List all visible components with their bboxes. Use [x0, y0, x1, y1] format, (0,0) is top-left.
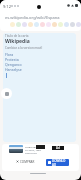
button[interactable]: Lorem ipsum	[2, 144, 79, 171]
button[interactable]	[28, 22, 33, 27]
staticText: Titulo de la carta	[5, 34, 29, 38]
button[interactable]	[34, 22, 39, 27]
staticText: ad	[37, 149, 40, 152]
staticText: Qengaroo	[5, 62, 22, 67]
button[interactable]	[76, 22, 81, 27]
button[interactable]	[10, 22, 15, 27]
button[interactable]	[64, 22, 69, 27]
staticText: adipiscing	[25, 151, 37, 154]
staticText: Wikipedia	[5, 38, 30, 45]
button[interactable]	[52, 22, 57, 27]
staticText: 9:12	[3, 4, 11, 9]
staticText: Hanselyse	[5, 67, 22, 72]
button[interactable]	[40, 22, 45, 27]
staticText: Flora	[5, 52, 14, 57]
staticText: Lorem ipsum	[25, 145, 41, 148]
staticText: Ad	[56, 146, 60, 150]
staticText: DOWNLOAD	[52, 159, 67, 166]
staticText: sit amet, cons	[25, 148, 42, 151]
button[interactable]	[46, 22, 51, 27]
staticText: es.wikipedia.org/wiki/Espana	[5, 15, 60, 20]
button[interactable]	[22, 22, 27, 27]
staticText: Cambiar a la version movil	[5, 46, 43, 50]
button[interactable]	[58, 22, 63, 27]
staticText: Protesta	[5, 57, 19, 62]
button[interactable]	[16, 22, 21, 27]
staticText: COMPRAR	[20, 160, 35, 164]
button[interactable]	[70, 22, 75, 27]
button[interactable]: DOWNLOAD	[46, 159, 69, 166]
button[interactable]: Translate page	[1, 88, 12, 99]
